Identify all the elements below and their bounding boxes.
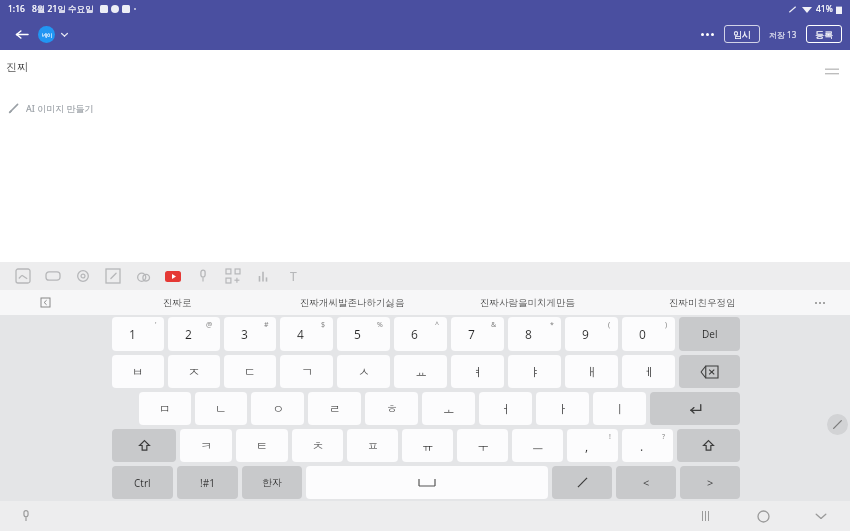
button[interactable]: 키: [679, 355, 740, 388]
staticText: 진짜로: [163, 297, 192, 309]
button[interactable]: 메뉴: [820, 60, 844, 84]
button[interactable]: ㅂ: [112, 355, 164, 388]
button[interactable]: 텍스트: [278, 262, 308, 290]
button[interactable]: ㅌ: [236, 429, 288, 462]
button[interactable]: ㅊ: [292, 429, 343, 462]
staticText: ㅑ: [529, 364, 541, 379]
button[interactable]: 카드: [38, 262, 68, 290]
staticText: 5: [354, 326, 361, 342]
button[interactable]: 사진: [8, 262, 38, 290]
button[interactable]: ㅎ: [365, 392, 418, 425]
button[interactable]: 임시: [724, 25, 760, 43]
staticText: ㅈ: [188, 364, 200, 379]
button[interactable]: 뒤로: [10, 23, 32, 45]
button[interactable]: 5: [337, 317, 390, 351]
staticText: 6: [411, 326, 418, 342]
button[interactable]: 진짜미친우정임: [615, 290, 790, 315]
button[interactable]: ㅅ: [337, 355, 390, 388]
button[interactable]: 3: [224, 317, 276, 351]
staticText: ): [665, 320, 668, 330]
button[interactable]: ㄷ: [224, 355, 276, 388]
button[interactable]: <: [616, 466, 676, 499]
button[interactable]: 글쓰기: [98, 262, 128, 290]
button[interactable]: Del: [679, 317, 740, 351]
button[interactable]: ㅏ: [536, 392, 589, 425]
button[interactable]: .: [622, 429, 673, 462]
button[interactable]: 클라우드: [128, 262, 158, 290]
button[interactable]: ㅗ: [422, 392, 475, 425]
button[interactable]: 진짜로: [90, 290, 265, 315]
button[interactable]: ㅜ: [457, 429, 508, 462]
button[interactable]: 저장 13: [769, 29, 797, 40]
button[interactable]: 키: [677, 429, 740, 462]
button[interactable]: 이전: [0, 290, 90, 315]
button[interactable]: 1: [112, 317, 164, 351]
button[interactable]: 한자: [242, 466, 302, 499]
button[interactable]: 등록: [806, 25, 842, 43]
button[interactable]: 설정: [68, 262, 98, 290]
staticText: 7: [468, 326, 475, 342]
button[interactable]: ㅓ: [479, 392, 532, 425]
button[interactable]: 키보드 이동: [827, 414, 848, 435]
button[interactable]: ㅍ: [347, 429, 398, 462]
button[interactable]: 더보기: [790, 290, 850, 315]
button[interactable]: !#1: [177, 466, 238, 499]
staticText: 3: [241, 326, 248, 342]
button[interactable]: ㅡ: [512, 429, 563, 462]
staticText: %: [377, 320, 383, 330]
button[interactable]: 키: [112, 429, 176, 462]
button[interactable]: ㄱ: [280, 355, 333, 388]
staticText: 진찌: [6, 60, 28, 74]
button[interactable]: 키: [552, 466, 612, 499]
button[interactable]: 뒤로: [806, 501, 836, 531]
button[interactable]: 음성 입력: [14, 504, 38, 528]
button[interactable]: 8: [508, 317, 561, 351]
button[interactable]: 네이: [38, 26, 55, 43]
button[interactable]: 6: [394, 317, 447, 351]
button[interactable]: 0: [622, 317, 675, 351]
button[interactable]: QR: [218, 262, 248, 290]
staticText: *: [550, 320, 554, 330]
button[interactable]: 9: [565, 317, 618, 351]
button[interactable]: ㅈ: [168, 355, 220, 388]
staticText: ㅏ: [557, 401, 569, 416]
button[interactable]: 진짜사람을미치게만듬: [440, 290, 615, 315]
staticText: ㄱ: [301, 364, 313, 379]
button[interactable]: [60, 30, 69, 39]
button[interactable]: 2: [168, 317, 220, 351]
button[interactable]: >: [680, 466, 740, 499]
button[interactable]: ,: [567, 429, 618, 462]
button[interactable]: ㅔ: [622, 355, 675, 388]
button[interactable]: 더보기: [696, 23, 718, 45]
button[interactable]: ㅑ: [508, 355, 561, 388]
button[interactable]: Ctrl: [112, 466, 173, 499]
staticText: ㅍ: [367, 438, 379, 453]
button[interactable]: ㄴ: [195, 392, 247, 425]
button[interactable]: 키: [650, 392, 740, 425]
button[interactable]: ㅋ: [180, 429, 232, 462]
button[interactable]: 4: [280, 317, 333, 351]
button[interactable]: 진짜개씨발존나하기싫음: [265, 290, 440, 315]
staticText: ㅋ: [200, 438, 212, 453]
staticText: 임시: [733, 29, 751, 40]
button[interactable]: ㄹ: [308, 392, 361, 425]
staticText: ㅓ: [500, 401, 512, 416]
button[interactable]: 홈: [748, 501, 778, 531]
button[interactable]: 동영상: [158, 262, 188, 290]
button[interactable]: AI 이미지 만들기: [8, 102, 94, 114]
staticText: 등록: [815, 29, 833, 40]
button[interactable]: ㅛ: [394, 355, 447, 388]
button[interactable]: ㅁ: [139, 392, 191, 425]
button[interactable]: 최근 앱: [690, 501, 720, 531]
button[interactable]: ㅕ: [451, 355, 504, 388]
button[interactable]: 통계: [248, 262, 278, 290]
button[interactable]: ㅇ: [251, 392, 304, 425]
button[interactable]: 키: [306, 466, 548, 499]
button[interactable]: ㅐ: [565, 355, 618, 388]
staticText: ㅔ: [643, 364, 655, 379]
button[interactable]: 7: [451, 317, 504, 351]
button[interactable]: ㅣ: [593, 392, 646, 425]
staticText: !#1: [200, 476, 215, 490]
button[interactable]: ㅠ: [402, 429, 453, 462]
button[interactable]: 음성: [188, 262, 218, 290]
